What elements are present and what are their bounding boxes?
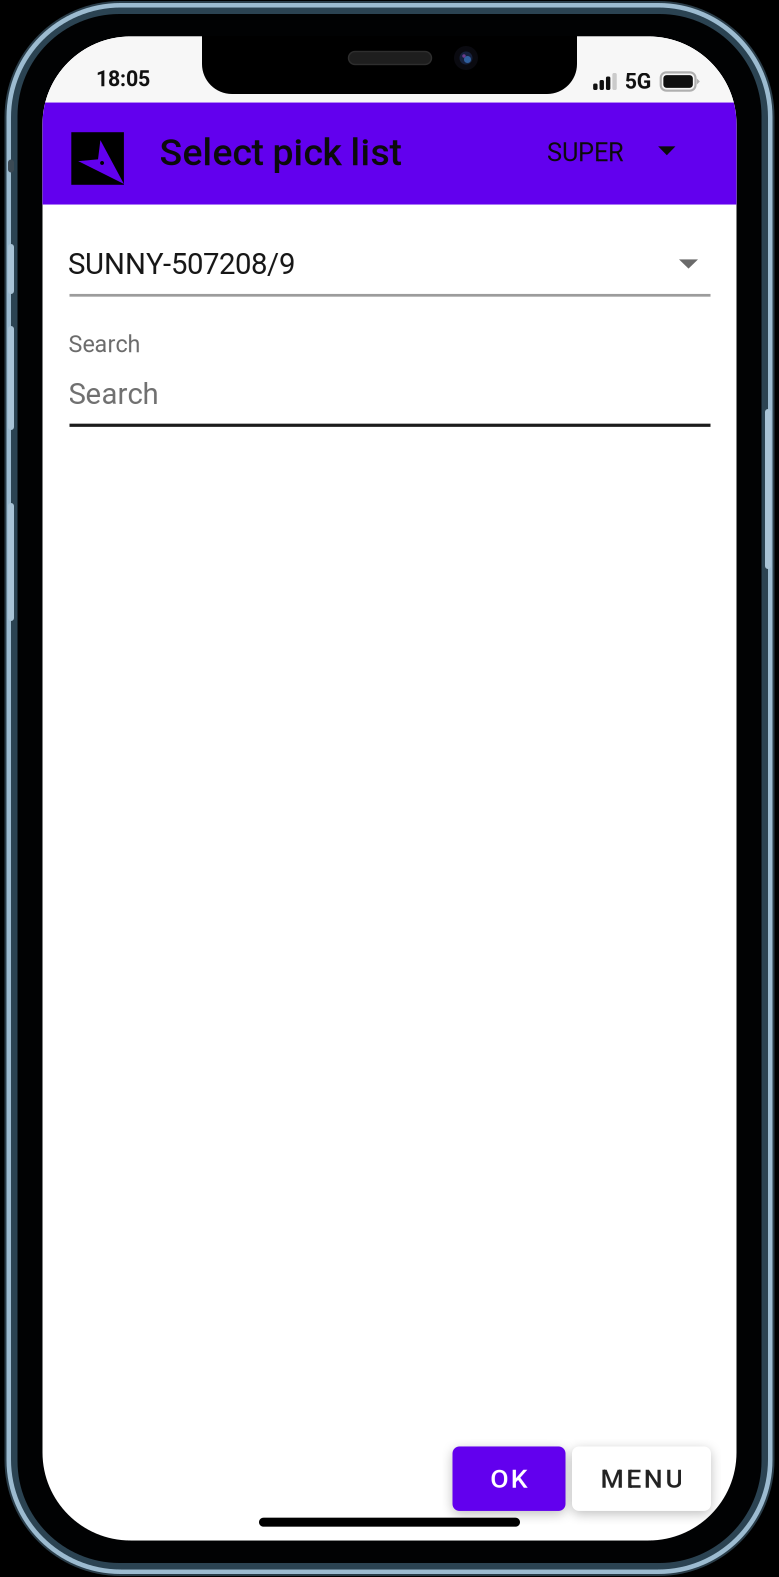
button[interactable]: SUPER (548, 102, 696, 204)
staticText: SUPER (547, 138, 624, 167)
staticText: Select pick list (159, 131, 401, 174)
staticText: 18:05 (96, 66, 150, 91)
button[interactable]: SUNNY-507208/9 (69, 228, 710, 298)
staticText: Search (68, 331, 140, 358)
staticText: K (511, 1463, 528, 1494)
staticText: 5G (625, 69, 652, 94)
staticText: O (490, 1463, 508, 1494)
button[interactable]: Search (69, 326, 710, 430)
staticText: Search (68, 377, 158, 411)
staticText: E (626, 1463, 641, 1494)
button[interactable]: M (572, 1446, 711, 1511)
button[interactable]: O (452, 1446, 565, 1511)
staticText: SUNNY-507208/9 (68, 247, 295, 281)
staticText: M (601, 1463, 624, 1494)
staticText: N (644, 1463, 663, 1494)
staticText: U (665, 1463, 682, 1494)
